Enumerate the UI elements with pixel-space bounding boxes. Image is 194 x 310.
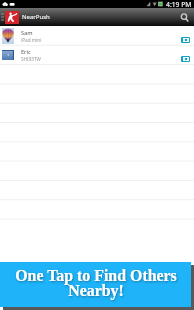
button[interactable]: App icon, up bbox=[5, 11, 19, 24]
button[interactable]: Eric bbox=[0, 45, 194, 64]
button[interactable]: Device bbox=[181, 37, 190, 43]
staticText: Eric bbox=[21, 48, 31, 56]
staticText: NearPush bbox=[22, 13, 50, 21]
staticText: One Tap to Find Others Nearby! bbox=[15, 267, 177, 299]
button[interactable]: Sam bbox=[0, 26, 194, 45]
button[interactable]: Search bbox=[176, 8, 193, 26]
staticText: iPad mini bbox=[21, 37, 42, 43]
button[interactable]: Device bbox=[181, 56, 190, 62]
staticText: Sam bbox=[21, 29, 33, 37]
button[interactable]: One Tap to Find Others Nearby! bbox=[0, 262, 191, 307]
staticText: SHI93TW bbox=[21, 56, 41, 62]
staticText: 4:19 PM bbox=[166, 0, 192, 8]
